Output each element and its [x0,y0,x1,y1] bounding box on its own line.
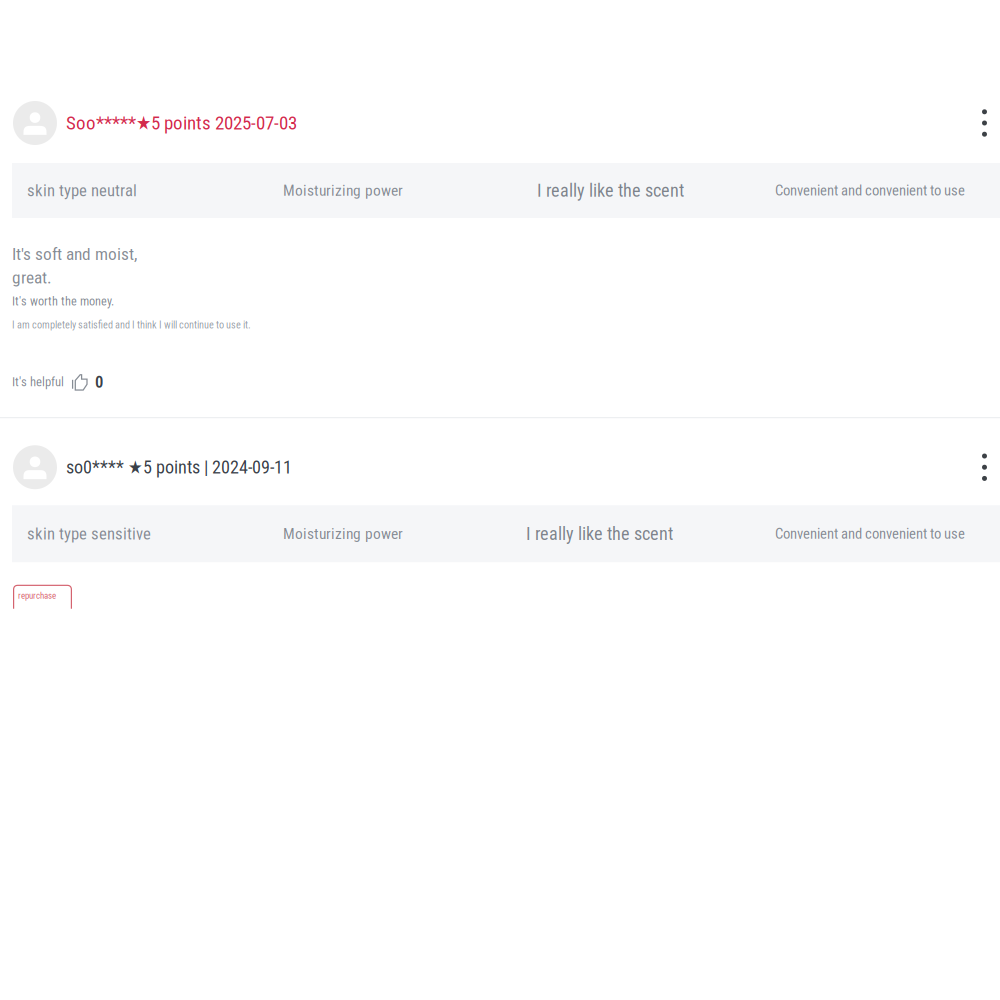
staticText: I really like the scent [526,523,673,544]
button[interactable]: Soo*****★5 points 2025-07-03 [0,101,307,145]
button[interactable]: so0**** ★5 points | 2024-09-11 [0,445,302,489]
staticText: Convenient and convenient to use [775,525,965,542]
staticText: I am completely satisfied and I think I … [12,319,251,331]
staticText: skin type neutral [27,181,137,200]
staticText: so0**** ★5 points | 2024-09-11 [66,457,292,478]
staticText: repurchase [18,591,56,601]
staticText: It's worth the money. [12,294,114,308]
staticText: great. [12,267,52,288]
staticText: skin type sensitive [27,524,151,543]
staticText: Moisturizing power [283,181,403,199]
button[interactable]: More options [973,101,995,145]
staticText: I really like the scent [537,180,684,201]
button[interactable]: More options [973,445,995,489]
staticText: 0 [95,372,103,392]
staticText: It's soft and moist, [12,244,137,264]
button[interactable]: repurchase [13,585,72,609]
button[interactable]: It's helpful [0,373,1000,391]
staticText: Convenient and convenient to use [775,182,965,199]
staticText: Moisturizing power [283,525,403,543]
staticText: Soo*****★5 points 2025-07-03 [66,112,297,134]
staticText: It's helpful [12,375,64,389]
